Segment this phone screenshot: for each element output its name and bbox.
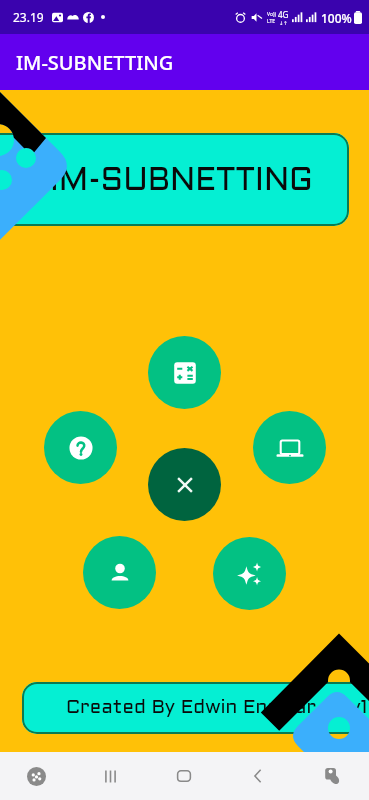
- staticText: Created By Edwin Encalar v1.0: [66, 699, 369, 717]
- button[interactable]: Accessibility: [0, 752, 73, 800]
- button[interactable]: Keyboard switcher: [295, 752, 369, 800]
- button[interactable]: Recents: [73, 752, 147, 800]
- button[interactable]: Profile: [83, 536, 156, 609]
- button[interactable]: Devices: [253, 411, 326, 484]
- staticText: 23.19: [13, 9, 44, 25]
- staticText: IM-SUBNETTING: [50, 167, 314, 196]
- button[interactable]: IM-SUBNETTING: [0, 133, 349, 226]
- staticText: Vo)): [267, 11, 276, 18]
- staticText: IM-SUBNETTING: [16, 49, 174, 76]
- button[interactable]: Help: [44, 411, 117, 484]
- button[interactable]: Calculator: [148, 336, 221, 409]
- button[interactable]: Created By Edwin Encalar v1.0: [22, 682, 369, 734]
- button[interactable]: Back: [221, 752, 295, 800]
- button[interactable]: Close menu: [148, 448, 221, 521]
- staticText: LTE: [267, 18, 276, 25]
- staticText: 100%: [321, 10, 352, 26]
- staticText: 4G: [278, 9, 289, 20]
- staticText: ↓↑: [279, 20, 288, 26]
- button[interactable]: More: [213, 537, 286, 610]
- button[interactable]: Home: [147, 752, 221, 800]
